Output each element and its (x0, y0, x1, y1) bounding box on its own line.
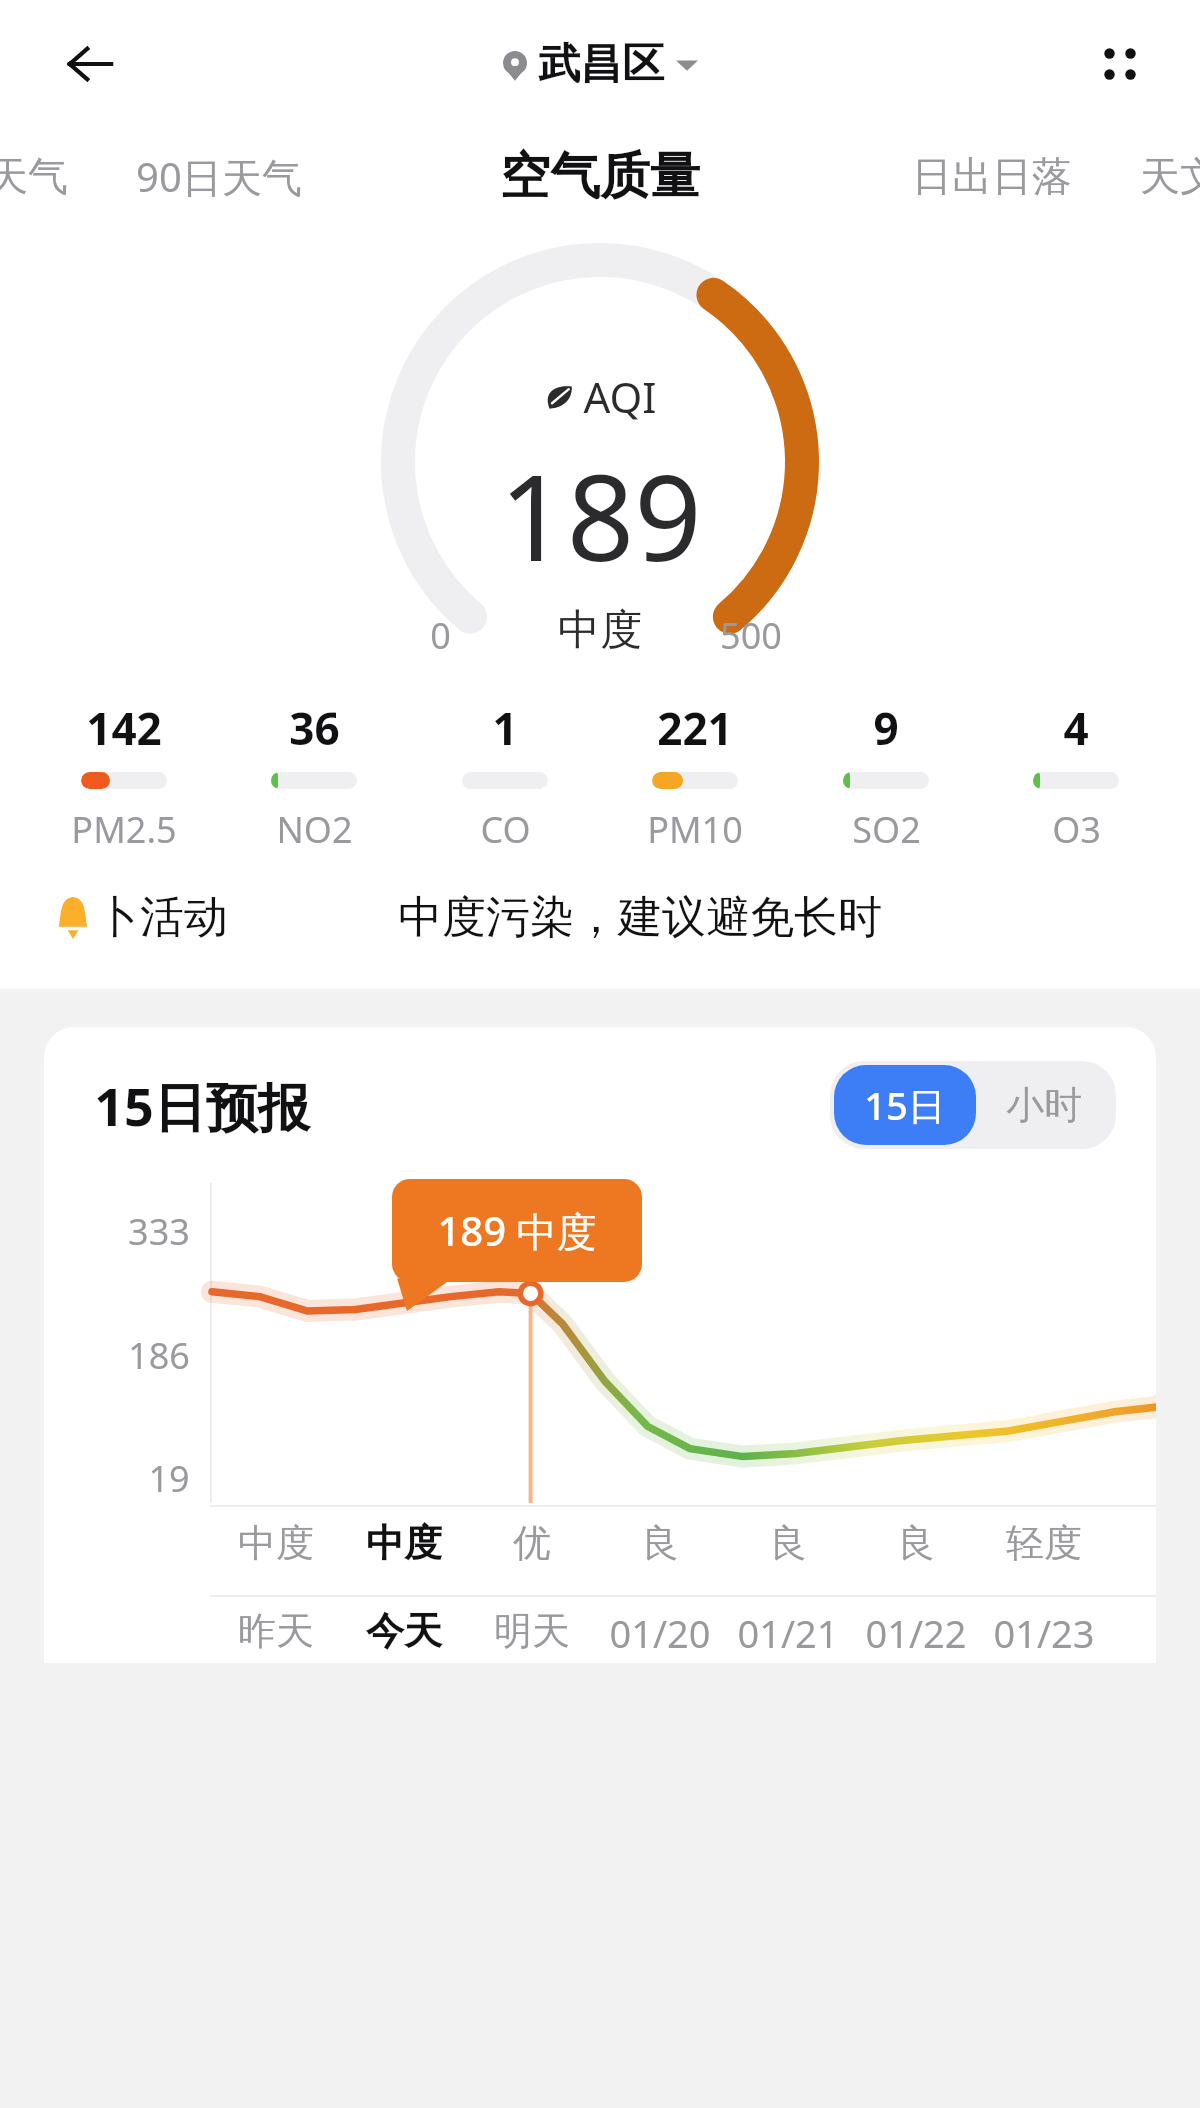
staticText: 昨天 (238, 1607, 314, 1655)
staticText: 天气 (0, 151, 68, 201)
staticText: 中度污染，建议避免长时 (398, 890, 882, 945)
staticText: 0 (430, 611, 451, 660)
staticText: 15日预报 (94, 1070, 310, 1141)
staticText: 武昌区 (538, 38, 664, 91)
staticText: 轻度 (1006, 1519, 1082, 1567)
staticText: 221 (657, 698, 733, 758)
staticText: SO2 (852, 805, 921, 854)
staticText: CO (480, 805, 531, 854)
staticText: 优 (513, 1519, 551, 1567)
button[interactable]: 9 (820, 694, 952, 858)
staticText: 90日天气 (136, 149, 302, 204)
button[interactable]: 卜活动 (54, 884, 1146, 951)
staticText: 142 (86, 698, 162, 758)
staticText: 中度 (366, 1519, 442, 1567)
staticText: PM2.5 (71, 805, 177, 854)
staticText: 01/21 (737, 1607, 839, 1659)
staticText: 333 (128, 1207, 190, 1256)
button[interactable]: Back (56, 30, 124, 98)
staticText: 189 (499, 435, 702, 596)
staticText: 明天 (494, 1607, 570, 1655)
button[interactable]: 4 (1010, 694, 1142, 858)
staticText: 186 (128, 1331, 190, 1380)
staticText: 空气质量 (500, 145, 700, 208)
staticText: 189 中度 (437, 1203, 597, 1258)
button[interactable]: 15日 (834, 1065, 976, 1145)
staticText: NO2 (276, 805, 353, 854)
staticText: AQI (583, 368, 657, 425)
button[interactable]: 日出日落 (912, 151, 1072, 201)
button[interactable]: 小时 (976, 1067, 1112, 1143)
staticText: 01/22 (865, 1607, 967, 1659)
staticText: 良 (897, 1519, 935, 1567)
button[interactable]: 武昌区 (502, 38, 698, 91)
button[interactable]: 36 (248, 694, 380, 858)
staticText: PM10 (647, 805, 743, 854)
staticText: 中度 (238, 1519, 314, 1567)
staticText: 36 (289, 698, 340, 758)
button[interactable]: 221 (629, 694, 761, 858)
staticText: 9 (873, 698, 899, 758)
staticText: 中度 (558, 604, 642, 657)
button[interactable]: 天气 (0, 151, 68, 201)
staticText: 良 (641, 1519, 679, 1567)
staticText: 良 (769, 1519, 807, 1567)
staticText: 今天 (366, 1607, 442, 1655)
button[interactable]: 天文 (1140, 151, 1200, 201)
button[interactable]: More options (1084, 28, 1156, 100)
staticText: 1 (492, 698, 518, 758)
staticText: 4 (1063, 698, 1089, 758)
staticText: 01/20 (609, 1607, 711, 1659)
staticText: 01/23 (993, 1607, 1095, 1659)
staticText: 小时 (1006, 1081, 1082, 1129)
staticText: 天文 (1140, 151, 1200, 201)
button[interactable]: 1 (439, 694, 571, 858)
staticText: 15日 (864, 1079, 946, 1131)
button[interactable]: 142 (58, 694, 190, 858)
staticText: 500 (720, 611, 782, 660)
staticText: 卜活动 (96, 890, 228, 945)
button[interactable]: 90日天气 (136, 149, 302, 204)
staticText: O3 (1052, 805, 1101, 854)
staticText: 19 (148, 1454, 190, 1503)
staticText: 日出日落 (912, 151, 1072, 201)
button[interactable]: 空气质量 (500, 145, 700, 208)
